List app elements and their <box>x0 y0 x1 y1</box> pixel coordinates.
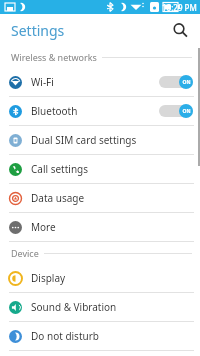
button[interactable]: Display <box>0 264 200 292</box>
staticText: Display <box>31 271 66 285</box>
staticText: Sound & Vibration <box>31 300 117 314</box>
staticText: Device <box>11 247 39 259</box>
button[interactable]: Data usage <box>0 184 200 212</box>
staticText: Data usage <box>31 191 85 205</box>
staticText: Wi-Fi <box>31 75 54 89</box>
button[interactable]: Dual SIM card settings <box>0 126 200 154</box>
staticText: More <box>31 220 56 234</box>
staticText: Call settings <box>31 162 89 176</box>
button[interactable]: Do not disturb <box>0 322 200 350</box>
staticText: ON <box>182 108 191 115</box>
button[interactable]: Call settings <box>0 155 200 183</box>
staticText: Dual SIM card settings <box>31 133 137 147</box>
staticText: Wireless & networks <box>11 51 97 63</box>
staticText: Bluetooth <box>31 104 78 118</box>
staticText: 10:29 PM <box>162 2 197 13</box>
button[interactable]: Toggle <box>159 75 193 89</box>
button[interactable]: Bluetooth <box>0 97 200 125</box>
button[interactable]: Sound & Vibration <box>0 293 200 321</box>
staticText: ON <box>182 79 191 86</box>
button[interactable]: Wi-Fi <box>0 68 200 96</box>
button[interactable]: More <box>0 213 200 241</box>
staticText: Do not disturb <box>31 329 99 343</box>
staticText: Settings <box>11 21 65 40</box>
button[interactable]: Search <box>168 18 192 42</box>
button[interactable]: Toggle <box>159 104 193 118</box>
